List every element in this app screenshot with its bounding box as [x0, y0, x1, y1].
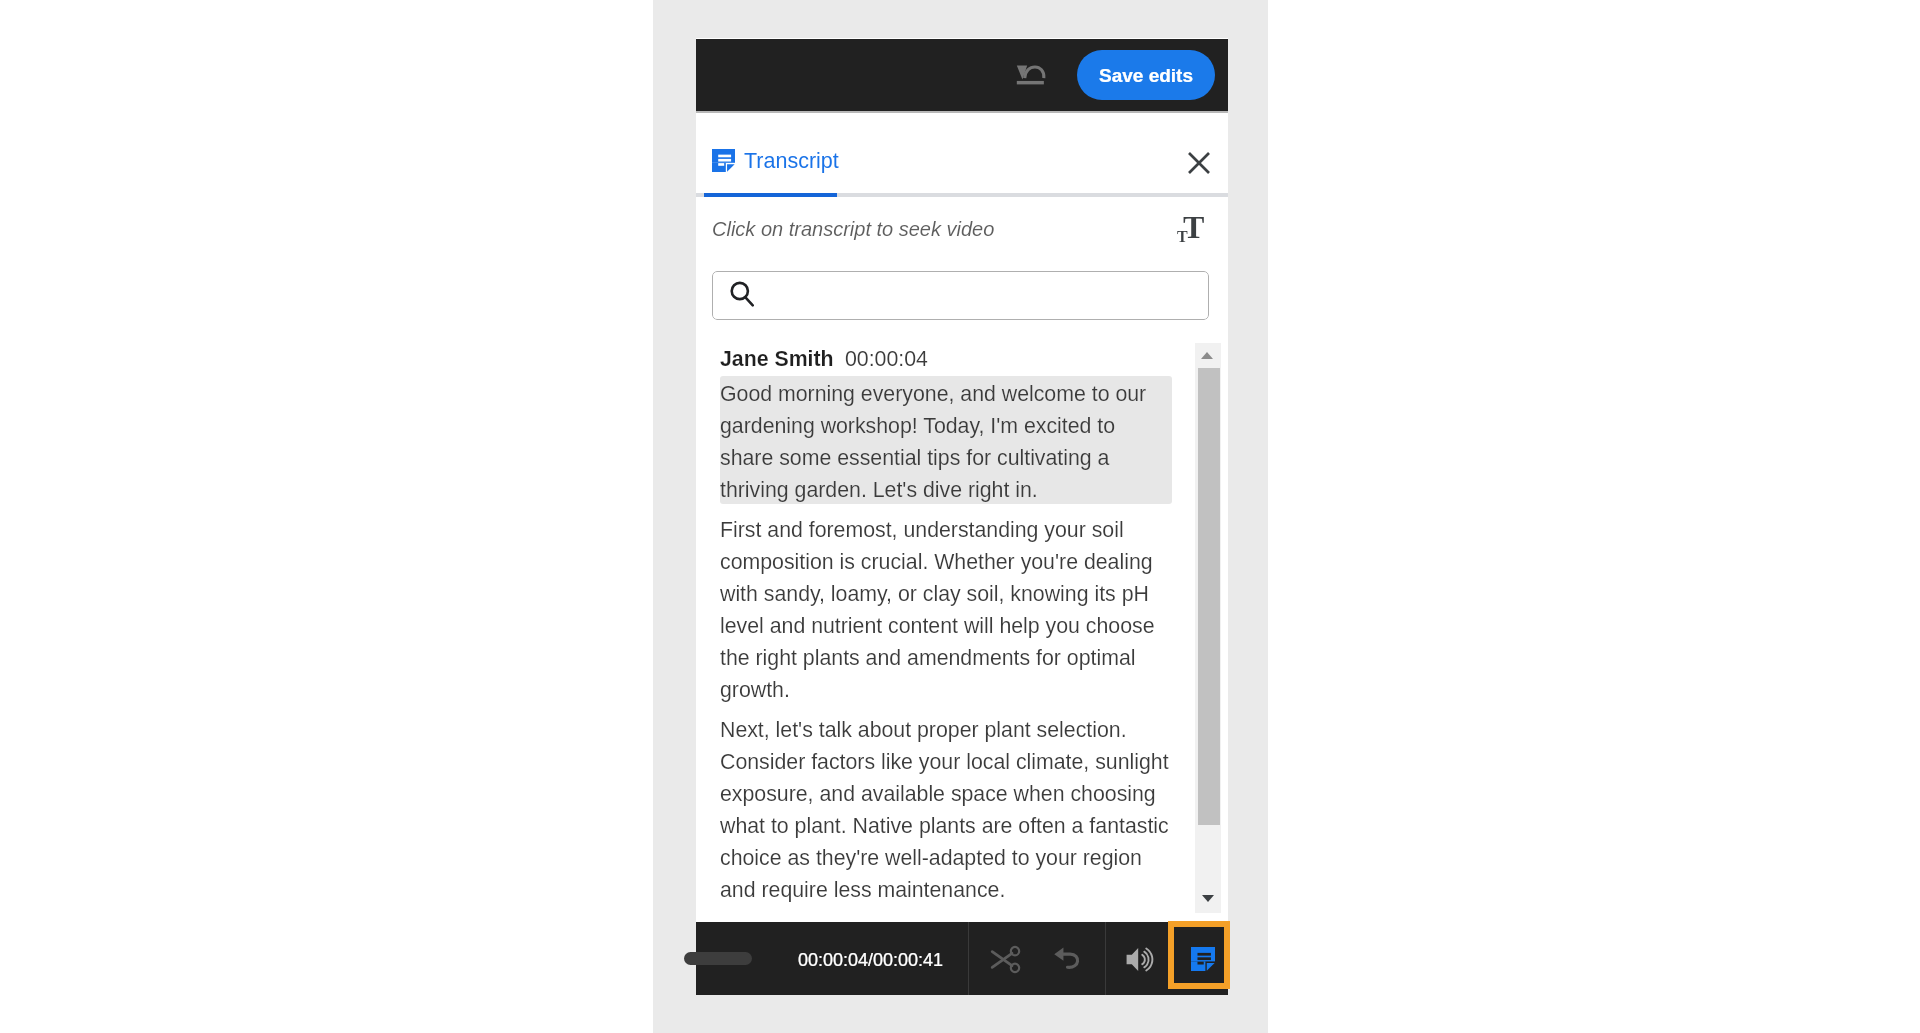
button[interactable]: Scroll down: [1196, 886, 1220, 910]
button[interactable]: Change text size: [1174, 207, 1220, 253]
button[interactable]: Good morning everyone, and welcome to ou…: [720, 376, 1172, 504]
staticText: Click on transcript to seek video: [712, 218, 995, 240]
staticText: 00:00:04/00:00:41: [798, 950, 944, 970]
button[interactable]: Cut: [987, 940, 1025, 978]
staticText: 00:00:04: [845, 347, 928, 371]
button[interactable]: Volume: [1121, 940, 1159, 978]
button[interactable]: Transcript: [696, 113, 1228, 193]
button[interactable]: Next, let's talk about proper plant sele…: [720, 712, 1172, 904]
staticText: Jane Smith: [720, 347, 834, 371]
button[interactable]: Close transcript: [1175, 139, 1223, 187]
button[interactable]: Transcript: [1168, 921, 1230, 989]
staticText: Transcript: [744, 149, 839, 173]
button[interactable]: Undo all edits: [1007, 51, 1053, 97]
staticText: T: [1177, 228, 1188, 246]
button[interactable]: First and foremost, understanding your s…: [720, 512, 1172, 704]
button[interactable]: Scroll up: [1195, 343, 1219, 367]
button[interactable]: Search transcript: [712, 271, 1209, 320]
staticText: T: [1183, 209, 1205, 244]
staticText: Save edits: [1099, 65, 1193, 86]
button[interactable]: Save edits: [1077, 50, 1215, 100]
button[interactable]: Undo: [1047, 938, 1087, 978]
staticText: Good morning everyone, and welcome to ou…: [720, 376, 1172, 504]
